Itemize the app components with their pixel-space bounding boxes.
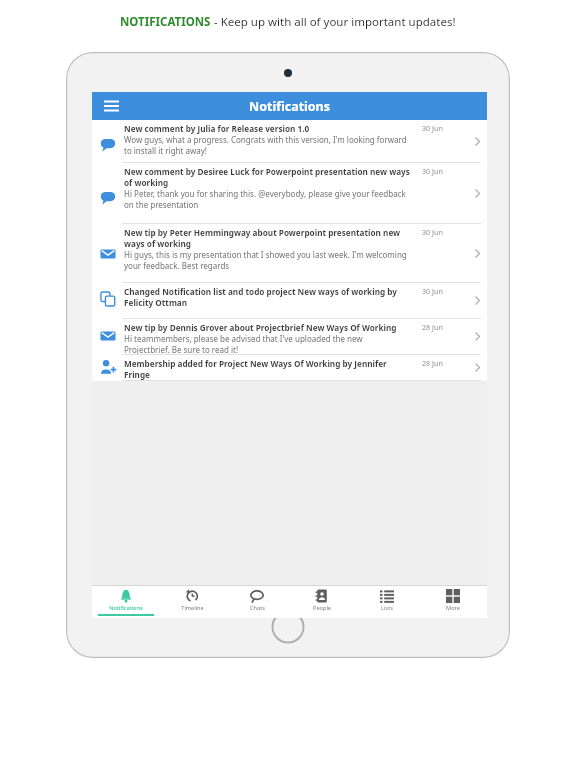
button[interactable]: New tip by Peter Hemmingway about Powerp…: [92, 224, 487, 282]
button[interactable]: Membership added for Project New Ways Of…: [92, 355, 487, 380]
staticText: Chats: [250, 604, 265, 612]
staticText: People: [313, 604, 331, 612]
button[interactable]: People: [291, 585, 353, 618]
button[interactable]: Timeline: [161, 585, 223, 618]
button[interactable]: New comment by Julia for Release version…: [92, 120, 487, 162]
button[interactable]: Notifications: [95, 585, 157, 618]
staticText: Membership added for Project New Ways Of…: [124, 358, 410, 380]
button[interactable]: New comment by Desiree Luck for Powerpoi…: [92, 163, 487, 223]
staticText: Hi teammembers, please be advised that I…: [124, 333, 410, 355]
staticText: Hi Peter, thank you for sharing this. @e…: [124, 188, 410, 210]
staticText: More: [446, 604, 460, 612]
staticText: 28 Jun: [422, 358, 443, 368]
button[interactable]: Menu: [92, 92, 130, 120]
staticText: 30 Jun: [422, 227, 443, 237]
staticText: 28 Jun: [422, 322, 443, 332]
button[interactable]: More: [422, 585, 484, 618]
staticText: New tip by Peter Hemmingway about Powerp…: [124, 227, 410, 249]
staticText: Changed Notification list and todo proje…: [124, 286, 410, 308]
staticText: 30 Jun: [422, 286, 443, 296]
button[interactable]: Lists: [356, 585, 418, 618]
button[interactable]: Chats: [226, 585, 288, 618]
staticText: New tip by Dennis Grover about Projectbr…: [124, 322, 397, 333]
staticText: 30 Jun: [422, 166, 443, 176]
button[interactable]: New tip by Dennis Grover about Projectbr…: [92, 319, 487, 354]
staticText: - Keep up with all of your important upd…: [211, 14, 456, 30]
staticText: 30 Jun: [422, 123, 443, 133]
button[interactable]: Changed Notification list and todo proje…: [92, 283, 487, 318]
staticText: Lists: [381, 604, 393, 612]
staticText: New comment by Julia for Release version…: [124, 123, 310, 134]
staticText: New comment by Desiree Luck for Powerpoi…: [124, 166, 410, 188]
staticText: Wow guys, what a progress. Congrats with…: [124, 134, 410, 156]
staticText: Timeline: [181, 604, 204, 612]
staticText: Notifications: [109, 604, 143, 612]
staticText: Hi guys, this is my presentation that I …: [124, 249, 410, 271]
staticText: Notifications: [249, 98, 331, 115]
staticText: NOTIFICATIONS: [120, 14, 211, 30]
